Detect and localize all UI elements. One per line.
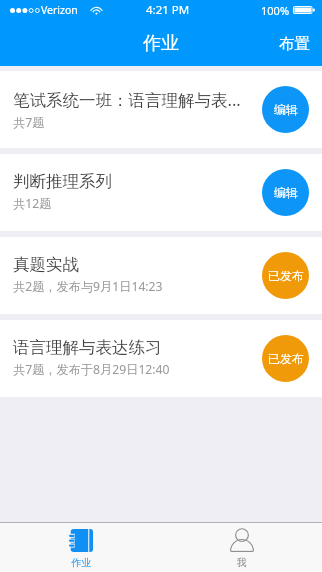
button[interactable]: 已发布 <box>262 252 309 299</box>
staticText: 已发布 <box>268 268 304 283</box>
staticText: Verizon <box>41 3 78 17</box>
button[interactable]: 我 <box>161 523 322 572</box>
button[interactable]: 布置 <box>276 32 313 56</box>
staticText: 100% <box>261 3 290 18</box>
staticText: 编辑 <box>274 185 298 200</box>
staticText: 4:21 PM <box>146 2 190 18</box>
staticText: 共7题 <box>13 114 45 131</box>
staticText: 我 <box>237 556 247 569</box>
button[interactable]: 判断推理系列 <box>0 154 322 231</box>
button[interactable]: 编辑 <box>262 169 309 216</box>
button[interactable]: 编辑 <box>262 86 309 133</box>
staticText: 真题实战 <box>13 254 79 275</box>
staticText: 共12题 <box>13 195 52 212</box>
button[interactable]: 笔试系统一班：语言理解与表... <box>0 71 322 148</box>
staticText: 共7题，发布于8月29日12:40 <box>13 361 170 378</box>
staticText: 作业 <box>143 32 179 55</box>
button[interactable]: 语言理解与表达练习 <box>0 320 322 397</box>
staticText: 布置 <box>279 34 310 54</box>
staticText: 共2题，发布与9月1日14:23 <box>13 278 163 295</box>
staticText: 编辑 <box>274 102 298 117</box>
button[interactable]: 真题实战 <box>0 237 322 314</box>
staticText: 已发布 <box>268 351 304 366</box>
button[interactable]: 作业 <box>0 523 161 572</box>
staticText: 作业 <box>71 556 91 569</box>
button[interactable]: 已发布 <box>262 335 309 382</box>
staticText: 笔试系统一班：语言理解与表... <box>13 88 241 111</box>
staticText: 判断推理系列 <box>13 171 112 192</box>
staticText: 语言理解与表达练习 <box>13 337 162 358</box>
